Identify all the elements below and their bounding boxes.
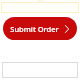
button[interactable] <box>2 62 78 78</box>
button[interactable]: Submit Order <box>3 17 77 40</box>
staticText: Submit Order <box>10 24 59 34</box>
button[interactable] <box>1 2 79 13</box>
